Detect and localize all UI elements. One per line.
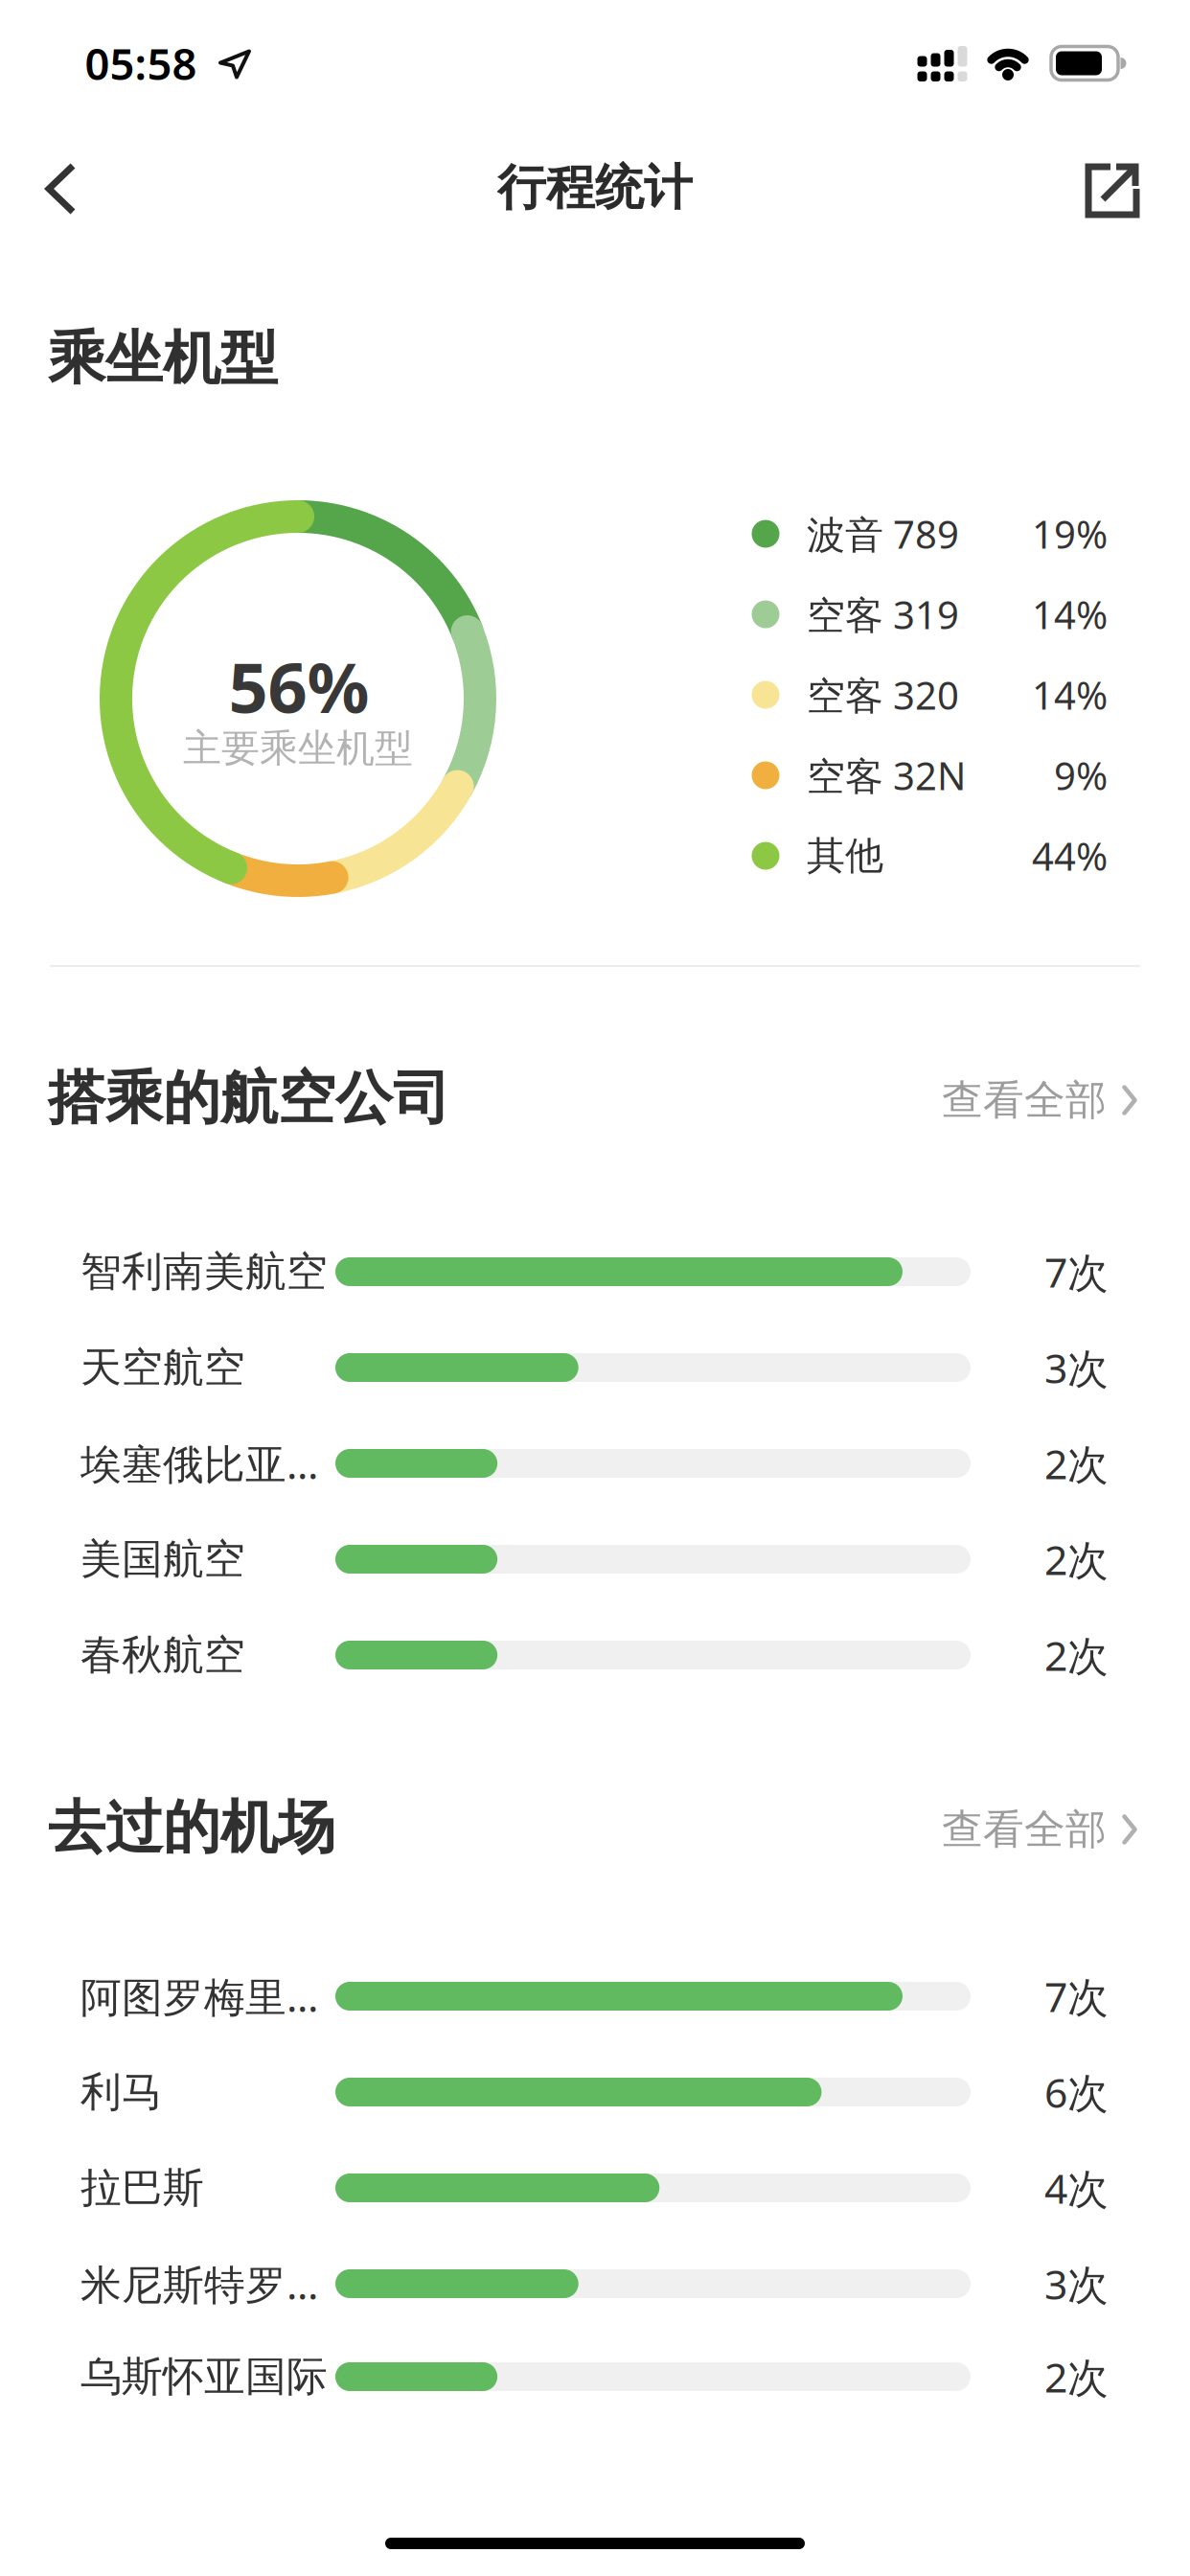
staticText: 搭乘的航空公司 — [48, 1063, 450, 1134]
staticText: 空客 319 — [807, 589, 959, 640]
staticText: 7次 — [1044, 1969, 1109, 2023]
staticText: 查看全部 — [942, 1804, 1107, 1855]
staticText: 利马 — [80, 2067, 163, 2117]
staticText: 3次 — [1044, 2257, 1109, 2311]
staticText: 行程统计 — [497, 158, 693, 218]
staticText: 56% — [229, 640, 369, 732]
staticText: 2次 — [1044, 1532, 1109, 1586]
staticText: 主要乘坐机型 — [183, 725, 413, 772]
staticText: 6次 — [1044, 2065, 1109, 2119]
staticText: 2次 — [1044, 1436, 1109, 1491]
staticText: 14% — [1032, 589, 1108, 640]
staticText: 其他 — [807, 832, 883, 879]
staticText: 波音 789 — [807, 508, 959, 559]
staticText: 乌斯怀亚国际 — [80, 2352, 328, 2402]
staticText: 空客 32N — [807, 750, 966, 801]
staticText: 2次 — [1044, 1628, 1109, 1682]
staticText: 春秋航空 — [80, 1630, 245, 1680]
staticText: 阿图罗梅里... — [80, 1969, 318, 2023]
staticText: 9% — [1054, 750, 1108, 801]
staticText: 空客 320 — [807, 669, 959, 720]
staticText: 4次 — [1044, 2161, 1109, 2215]
staticText: 乘坐机型 — [48, 323, 278, 394]
staticText: 查看全部 — [942, 1075, 1107, 1125]
staticText: 2次 — [1044, 2350, 1109, 2404]
staticText: 3次 — [1044, 1340, 1109, 1395]
staticText: 14% — [1032, 669, 1108, 720]
staticText: 05:58 — [85, 34, 197, 92]
button[interactable]: 查看全部 — [942, 1804, 1139, 1855]
button[interactable]: Back — [45, 162, 78, 216]
staticText: 19% — [1032, 508, 1108, 559]
staticText: 天空航空 — [80, 1342, 245, 1393]
staticText: 智利南美航空 — [80, 1247, 328, 1297]
button[interactable]: 查看全部 — [942, 1075, 1139, 1125]
staticText: 米尼斯特罗... — [80, 2257, 318, 2311]
staticText: 7次 — [1044, 1245, 1109, 1299]
staticText: 44% — [1032, 830, 1108, 881]
staticText: 拉巴斯 — [80, 2163, 204, 2213]
staticText: 埃塞俄比亚... — [80, 1436, 318, 1491]
staticText: 美国航空 — [80, 1534, 245, 1584]
button[interactable]: Share — [1082, 160, 1141, 219]
staticText: 去过的机场 — [48, 1792, 335, 1863]
